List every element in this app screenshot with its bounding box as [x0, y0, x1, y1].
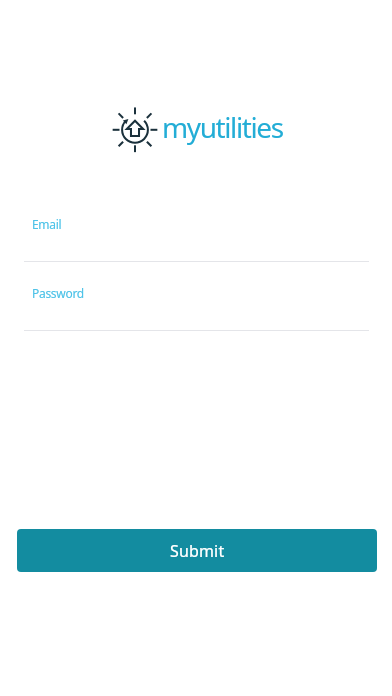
staticText: Submit — [170, 540, 225, 562]
staticText: Email — [32, 216, 62, 232]
button[interactable]: Submit — [17, 529, 377, 572]
button[interactable]: Password — [0, 281, 392, 335]
button[interactable]: Email — [0, 212, 392, 266]
other: myutilities logo — [112, 107, 158, 152]
staticText: myutilities — [162, 108, 283, 146]
staticText: Password — [32, 285, 84, 301]
